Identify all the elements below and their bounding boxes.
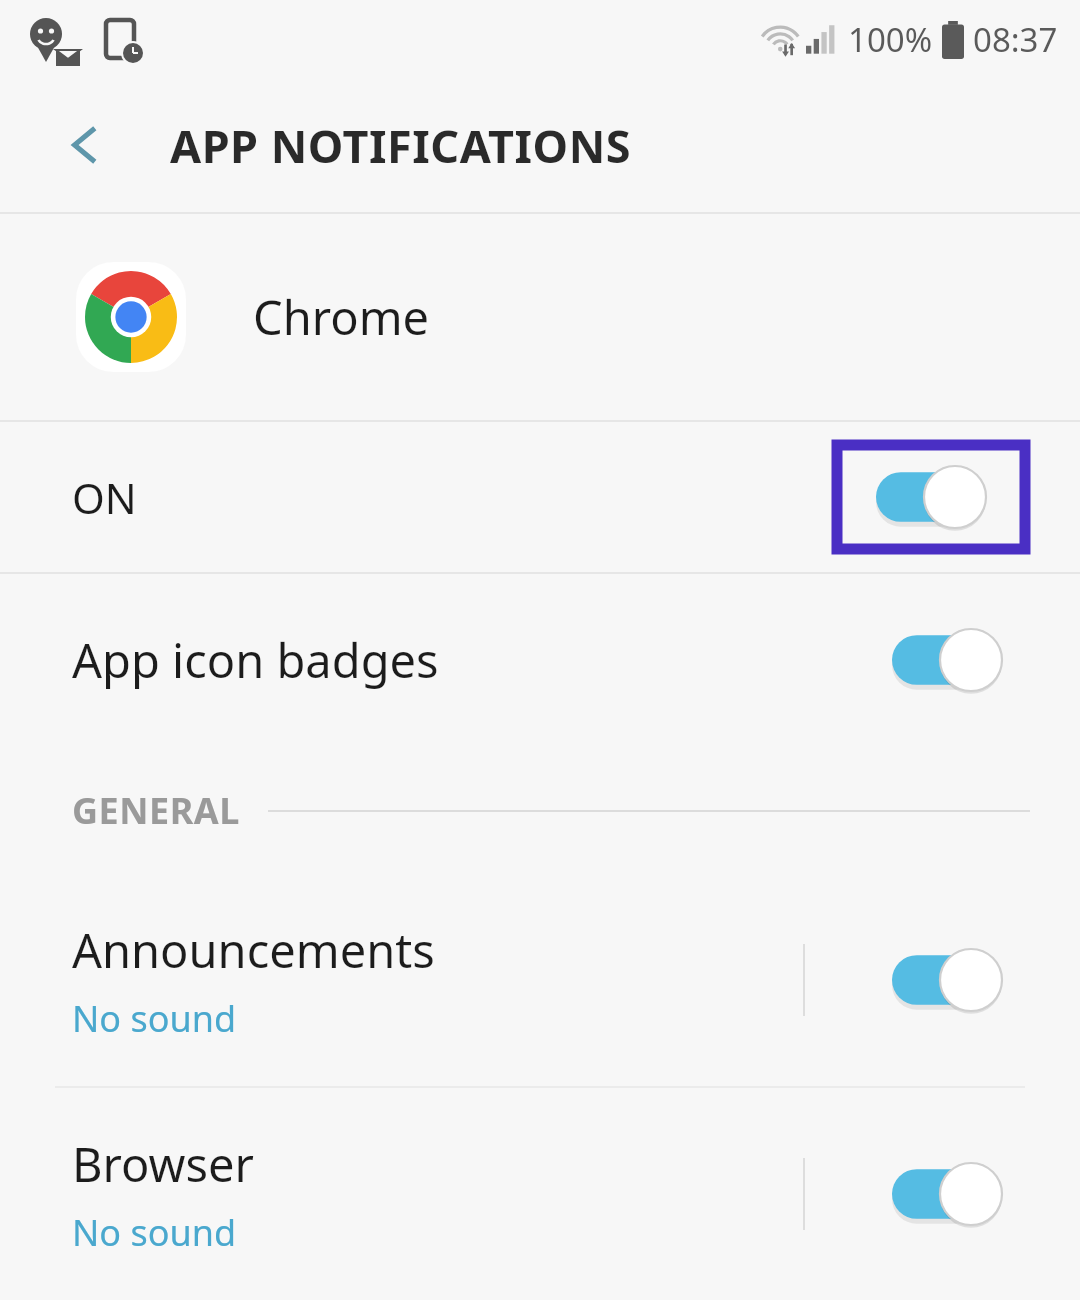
- button[interactable]: Back: [48, 107, 124, 183]
- button[interactable]: App icon badges: [0, 574, 1080, 746]
- staticText: No sound: [72, 1208, 237, 1257]
- staticText: GENERAL: [72, 786, 240, 835]
- staticText: No sound: [72, 994, 237, 1043]
- staticText: Chrome: [253, 285, 430, 349]
- staticText: App icon badges: [72, 628, 439, 692]
- staticText: 100%: [848, 17, 933, 62]
- button[interactable]: ON: [0, 422, 1080, 572]
- button[interactable]: Toggle: [892, 949, 1002, 1011]
- button[interactable]: Toggle: [892, 629, 1002, 691]
- button[interactable]: Toggle: [876, 466, 986, 528]
- staticText: APP NOTIFICATIONS: [170, 115, 632, 176]
- staticText: Announcements: [72, 918, 435, 982]
- button[interactable]: Browser: [0, 1088, 1080, 1300]
- button[interactable]: Announcements: [0, 874, 1080, 1086]
- button[interactable]: Toggle: [892, 1163, 1002, 1225]
- staticText: 08:37: [973, 17, 1058, 62]
- button[interactable]: Chrome: [0, 214, 1080, 420]
- staticText: Browser: [72, 1132, 254, 1196]
- staticText: ON: [72, 469, 137, 526]
